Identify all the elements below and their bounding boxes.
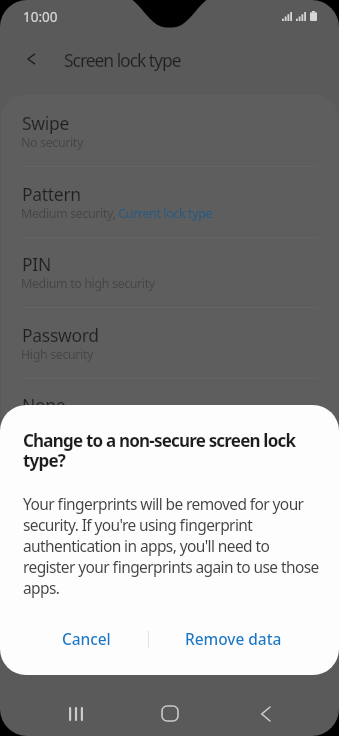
staticText: High security bbox=[21, 346, 93, 363]
staticText: Screen lock type bbox=[64, 48, 181, 72]
button[interactable]: Back bbox=[251, 699, 280, 728]
staticText: Change to a non-secure screen lock type? bbox=[23, 429, 323, 472]
button[interactable]: Home bbox=[155, 699, 184, 728]
button[interactable]: Navigate up bbox=[14, 42, 48, 76]
button[interactable]: Swipe bbox=[1, 95, 338, 166]
staticText: Cancel bbox=[62, 628, 111, 649]
staticText: No security bbox=[21, 134, 83, 151]
button[interactable]: Password bbox=[1, 307, 338, 378]
staticText: Remove data bbox=[185, 628, 282, 649]
button[interactable]: Recent apps bbox=[61, 699, 90, 728]
staticText: Password bbox=[22, 323, 99, 347]
button[interactable]: Pattern bbox=[1, 166, 338, 237]
staticText: Pattern bbox=[22, 182, 81, 206]
staticText: PIN bbox=[22, 252, 51, 276]
staticText: Medium to high security bbox=[21, 275, 155, 292]
staticText: 10:00 bbox=[23, 8, 58, 26]
button[interactable]: Cancel bbox=[23, 617, 150, 659]
button[interactable]: PIN bbox=[1, 236, 338, 307]
staticText: None bbox=[22, 393, 66, 417]
staticText: Your fingerprints will be removed for yo… bbox=[23, 493, 321, 598]
button[interactable]: Remove data bbox=[147, 617, 320, 659]
staticText: Swipe bbox=[22, 111, 70, 135]
button[interactable]: None bbox=[1, 377, 338, 435]
staticText: Medium security, Current lock type bbox=[21, 205, 213, 222]
